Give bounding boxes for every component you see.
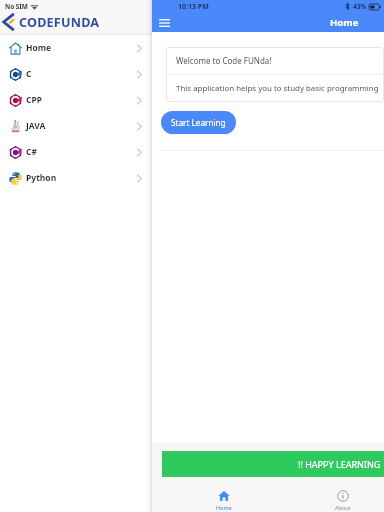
button[interactable]: Home bbox=[0, 35, 152, 61]
staticText: !! HAPPY LEARNING bbox=[298, 458, 381, 470]
staticText: C bbox=[26, 68, 32, 80]
staticText: This application helps you to study basi… bbox=[176, 83, 384, 94]
staticText: About bbox=[335, 504, 351, 511]
staticText: CODEFUNDA bbox=[19, 14, 100, 31]
button[interactable]: About bbox=[323, 477, 363, 512]
staticText: No SIM bbox=[5, 2, 28, 11]
staticText: Python bbox=[26, 172, 57, 184]
staticText: 43% bbox=[353, 2, 367, 11]
staticText: Home bbox=[216, 504, 232, 511]
button[interactable]: JAVA bbox=[0, 113, 152, 139]
button[interactable]: Python bbox=[0, 165, 152, 191]
button[interactable]: CPP bbox=[0, 87, 152, 113]
staticText: Start Learning bbox=[171, 117, 226, 128]
button[interactable]: Home bbox=[204, 477, 244, 512]
staticText: Home bbox=[26, 42, 52, 54]
staticText: 10:13 PM bbox=[178, 2, 209, 12]
staticText: Home bbox=[330, 16, 359, 29]
staticText: CPP bbox=[26, 94, 43, 106]
staticText: JAVA bbox=[26, 120, 46, 132]
button[interactable]: Start Learning bbox=[161, 111, 236, 134]
button[interactable]: C bbox=[0, 61, 152, 87]
button[interactable]: Open navigation menu bbox=[156, 15, 172, 31]
staticText: Welcome to Code FUNda! bbox=[176, 55, 272, 66]
button[interactable]: C# bbox=[0, 139, 152, 165]
staticText: C# bbox=[26, 146, 37, 158]
button[interactable]: !! HAPPY LEARNING bbox=[162, 451, 384, 477]
